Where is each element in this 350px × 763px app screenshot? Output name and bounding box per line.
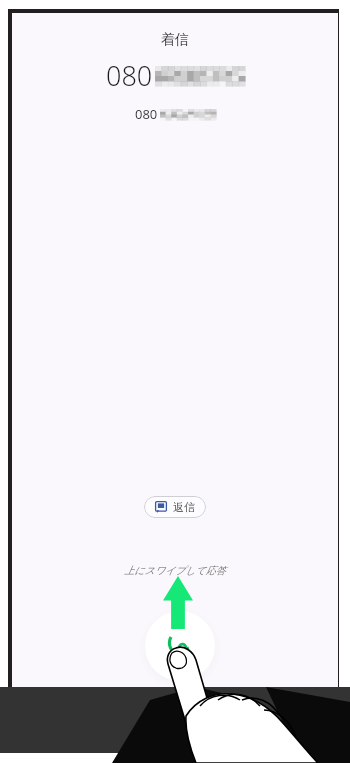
staticText: 返信 <box>173 500 195 514</box>
button[interactable]: 返信 <box>144 496 206 518</box>
staticText: 上にスワイプして応答 <box>124 564 226 577</box>
button[interactable]: Answer call <box>145 611 215 681</box>
staticText: 着信 <box>161 31 189 49</box>
staticText: 080 <box>135 105 158 123</box>
staticText: 080 <box>106 57 153 94</box>
